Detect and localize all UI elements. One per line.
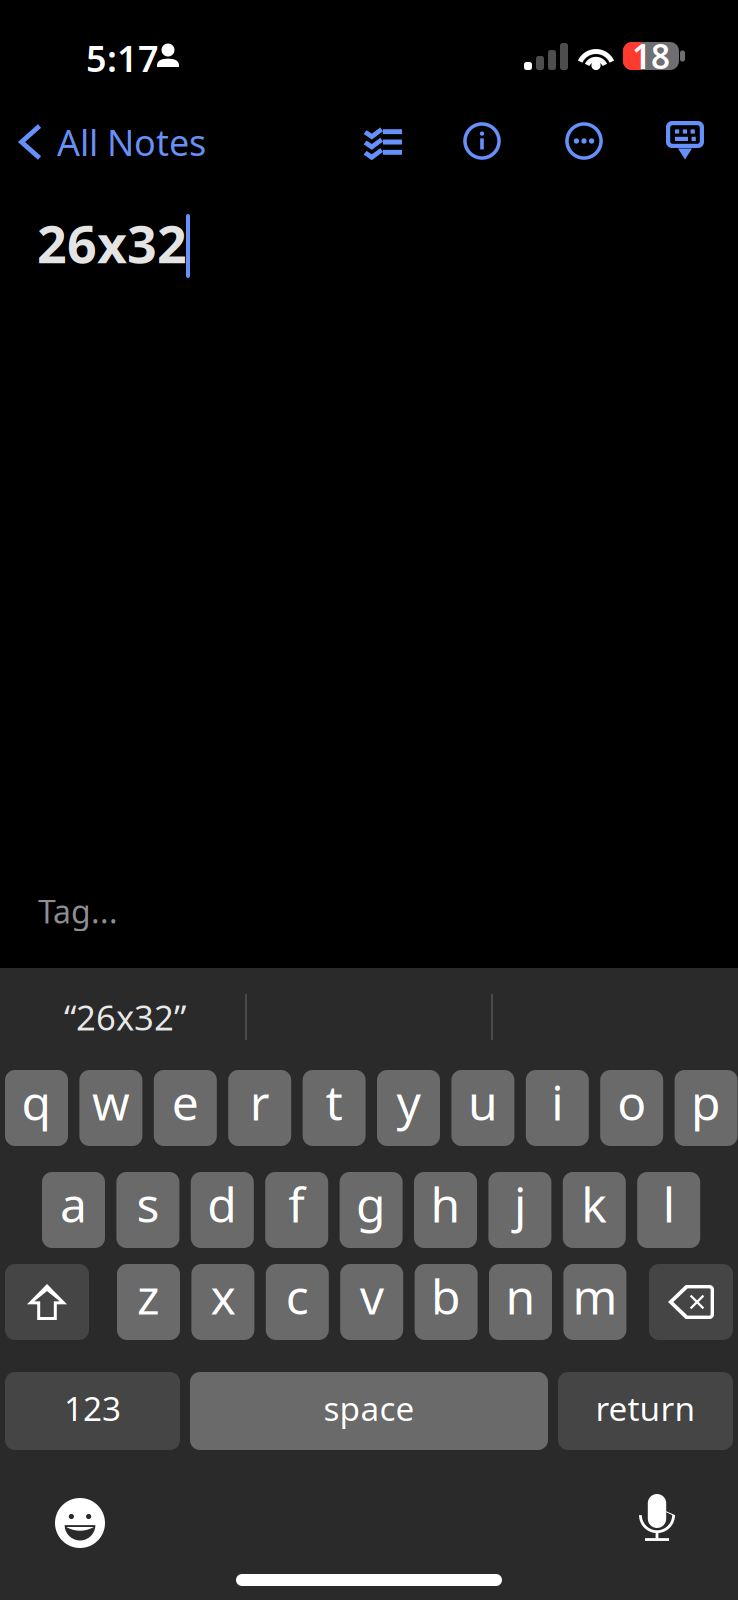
button[interactable]: b	[415, 1264, 478, 1340]
staticText: z	[137, 1264, 160, 1328]
staticText: All Notes	[57, 118, 206, 166]
staticText: g	[356, 1172, 386, 1236]
button[interactable]: Checklist	[358, 116, 410, 168]
staticText: r	[250, 1070, 270, 1134]
button[interactable]: l	[637, 1172, 700, 1248]
button[interactable]: Hide Keyboard	[655, 113, 715, 169]
staticText: 123	[64, 1386, 121, 1430]
staticText: f	[288, 1172, 305, 1236]
button[interactable]: j	[488, 1172, 551, 1248]
button[interactable]: o	[600, 1070, 663, 1146]
staticText: return	[595, 1386, 695, 1430]
button[interactable]: u	[451, 1070, 514, 1146]
button[interactable]: All Notes	[4, 110, 257, 174]
staticText: 5:17	[86, 34, 159, 82]
staticText: h	[430, 1172, 460, 1236]
button[interactable]: 123	[5, 1372, 180, 1450]
button[interactable]: Delete	[649, 1264, 733, 1340]
staticText: n	[505, 1264, 535, 1328]
button[interactable]: Emoji	[55, 1498, 105, 1548]
button[interactable]: n	[489, 1264, 552, 1340]
button[interactable]: return	[558, 1372, 733, 1450]
button[interactable]: space	[190, 1372, 548, 1450]
staticText: c	[286, 1264, 309, 1328]
staticText: v	[360, 1264, 384, 1328]
staticText: o	[617, 1070, 646, 1134]
button[interactable]: Dictate	[637, 1492, 677, 1552]
button[interactable]: More	[562, 119, 606, 163]
staticText: b	[431, 1264, 461, 1328]
button[interactable]: r	[228, 1070, 291, 1146]
button[interactable]: x	[191, 1264, 254, 1340]
staticText: q	[21, 1070, 51, 1134]
button[interactable]: Info	[460, 119, 504, 163]
staticText: d	[207, 1172, 237, 1236]
button[interactable]: v	[340, 1264, 403, 1340]
staticText: w	[92, 1070, 130, 1134]
staticText: s	[136, 1172, 159, 1236]
button[interactable]: g	[340, 1172, 403, 1248]
staticText: a	[60, 1172, 87, 1236]
button[interactable]: i	[526, 1070, 589, 1146]
staticText: j	[514, 1172, 526, 1236]
button[interactable]: c	[266, 1264, 329, 1340]
button[interactable]: Shift	[5, 1264, 89, 1340]
staticText: e	[172, 1070, 199, 1134]
staticText: “26x32”	[64, 994, 186, 1040]
button[interactable]: q	[5, 1070, 68, 1146]
staticText: x	[210, 1264, 235, 1328]
button[interactable]: p	[675, 1070, 738, 1146]
button[interactable]: d	[191, 1172, 254, 1248]
button[interactable]: s	[116, 1172, 179, 1248]
button[interactable]: f	[265, 1172, 328, 1248]
button[interactable]: e	[154, 1070, 217, 1146]
staticText: 18	[632, 34, 670, 78]
staticText: k	[581, 1172, 607, 1236]
button[interactable]: h	[414, 1172, 477, 1248]
button[interactable]: z	[117, 1264, 180, 1340]
button[interactable]: “26x32”	[64, 994, 229, 1040]
button[interactable]: a	[42, 1172, 105, 1248]
button[interactable]: m	[563, 1264, 626, 1340]
staticText: m	[572, 1264, 617, 1328]
staticText: p	[691, 1070, 721, 1134]
button[interactable]: w	[79, 1070, 142, 1146]
button[interactable]: t	[303, 1070, 366, 1146]
staticText: u	[468, 1070, 498, 1134]
staticText: 26x32	[37, 208, 187, 278]
staticText: Tag...	[38, 890, 118, 932]
staticText: l	[663, 1172, 675, 1236]
button[interactable]: y	[377, 1070, 440, 1146]
staticText: space	[323, 1386, 414, 1430]
staticText: i	[551, 1070, 563, 1134]
staticText: t	[326, 1070, 343, 1134]
button[interactable]: k	[563, 1172, 626, 1248]
staticText: y	[396, 1070, 420, 1134]
